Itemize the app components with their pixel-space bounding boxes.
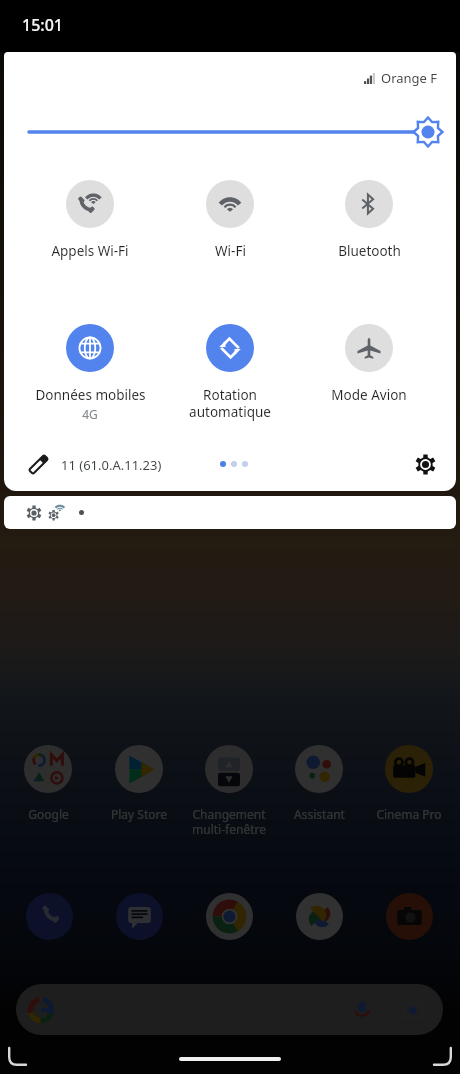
button[interactable]: Cinema Pro <box>366 745 452 822</box>
staticText: Données mobiles <box>35 386 146 404</box>
button[interactable]: Assistant <box>276 745 362 822</box>
button[interactable] <box>16 984 443 1035</box>
staticText: Bluetooth <box>338 242 401 260</box>
button[interactable]: Chrome <box>206 893 253 940</box>
staticText: Play Store <box>111 806 167 822</box>
button[interactable]: Données mobiles <box>20 324 160 422</box>
staticText: 4G <box>82 406 98 422</box>
staticText: 11 (61.0.A.11.23) <box>61 456 162 474</box>
button[interactable]: Play Store <box>96 745 182 822</box>
button[interactable]: Bluetooth <box>299 180 439 260</box>
staticText: Appels Wi-Fi <box>51 242 129 260</box>
button[interactable]: Rotation automatique <box>160 324 300 421</box>
button[interactable]: Phone <box>26 893 73 940</box>
button[interactable]: Mode Avion <box>299 324 439 404</box>
button[interactable]: Google <box>5 745 91 822</box>
button[interactable]: Settings <box>409 448 441 480</box>
button[interactable]: Appels Wi-Fi <box>20 180 160 260</box>
staticText: Mode Avion <box>331 386 407 404</box>
staticText: Google <box>28 806 69 822</box>
button[interactable]: Wi-Fi <box>160 180 300 260</box>
button[interactable]: Camera <box>386 893 433 940</box>
button[interactable]: Changement multi-fenêtre <box>186 745 272 837</box>
button[interactable] <box>4 496 456 529</box>
button[interactable]: Edit tiles <box>24 450 52 478</box>
staticText: Cinema Pro <box>376 806 442 822</box>
staticText: Orange F <box>381 69 438 87</box>
staticText: Wi-Fi <box>215 242 246 260</box>
button[interactable]: Messages <box>116 893 163 940</box>
button[interactable]: Photos <box>296 893 343 940</box>
staticText: Rotation automatique <box>189 386 271 421</box>
staticText: 15:01 <box>22 14 63 36</box>
staticText: Assistant <box>294 806 345 822</box>
staticText: Changement multi-fenêtre <box>186 806 272 837</box>
